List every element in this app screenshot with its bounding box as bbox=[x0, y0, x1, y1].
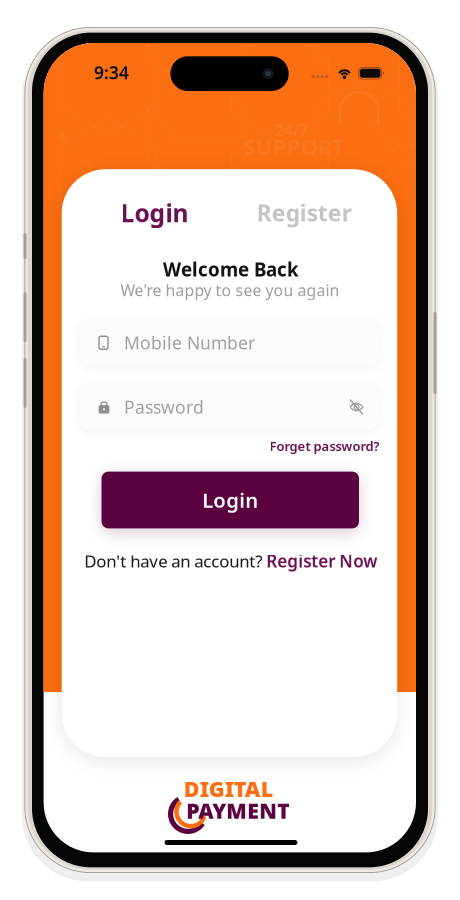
button[interactable]: Password bbox=[80, 384, 379, 430]
staticText: 9:34 bbox=[94, 61, 129, 84]
staticText: Register bbox=[257, 197, 352, 228]
staticText: We're happy to see you again bbox=[120, 279, 339, 301]
button[interactable]: Login bbox=[101, 472, 359, 528]
staticText: Welcome Back bbox=[163, 256, 299, 282]
button[interactable]: Register bbox=[251, 193, 358, 232]
staticText: 24/7 bbox=[275, 120, 308, 140]
button[interactable]: Login bbox=[114, 192, 194, 233]
staticText: Register Now bbox=[262, 549, 377, 573]
button[interactable]: Mobile Number bbox=[80, 320, 379, 365]
staticText: DIGITAL bbox=[184, 774, 273, 803]
staticText: Forget password? bbox=[269, 437, 379, 455]
button[interactable]: Forget password? bbox=[267, 435, 381, 457]
staticText: SUPPORT bbox=[243, 131, 344, 161]
button[interactable]: Register Now bbox=[262, 549, 377, 573]
staticText: Login bbox=[202, 486, 258, 514]
staticText: PAYMENT bbox=[186, 796, 290, 825]
staticText: Don't have an account? bbox=[84, 550, 262, 572]
staticText: Login bbox=[120, 196, 188, 229]
staticText: Mobile Number bbox=[124, 331, 255, 355]
staticText: Password bbox=[124, 395, 204, 419]
